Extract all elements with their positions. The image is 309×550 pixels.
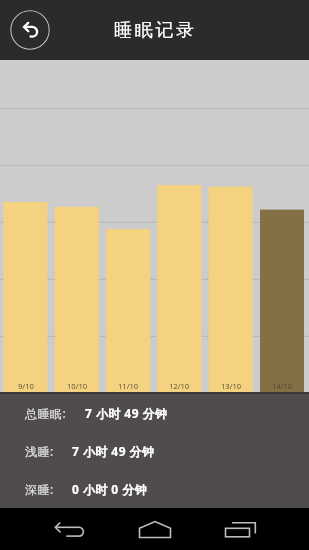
staticText: 11/10 — [118, 381, 139, 391]
staticText: 7 小时 49 分钟 — [72, 443, 155, 459]
staticText: 深睡: — [25, 481, 54, 497]
staticText: 10/10 — [67, 381, 88, 391]
staticText: 14/10 — [272, 381, 293, 391]
staticText: 睡眠记录 — [114, 19, 197, 42]
staticText: 13/10 — [221, 381, 242, 391]
staticText: 12/10 — [169, 381, 190, 391]
button[interactable]: Back — [10, 10, 50, 50]
button[interactable]: Home — [126, 508, 184, 550]
button[interactable]: Recents — [212, 508, 270, 550]
staticText: 9/10 — [18, 381, 34, 391]
button[interactable]: Back — [40, 508, 98, 550]
staticText: 总睡眠: — [25, 405, 67, 421]
staticText: 0 小时 0 分钟 — [72, 481, 148, 497]
staticText: 浅睡: — [25, 443, 54, 459]
staticText: 7 小时 49 分钟 — [85, 405, 168, 421]
